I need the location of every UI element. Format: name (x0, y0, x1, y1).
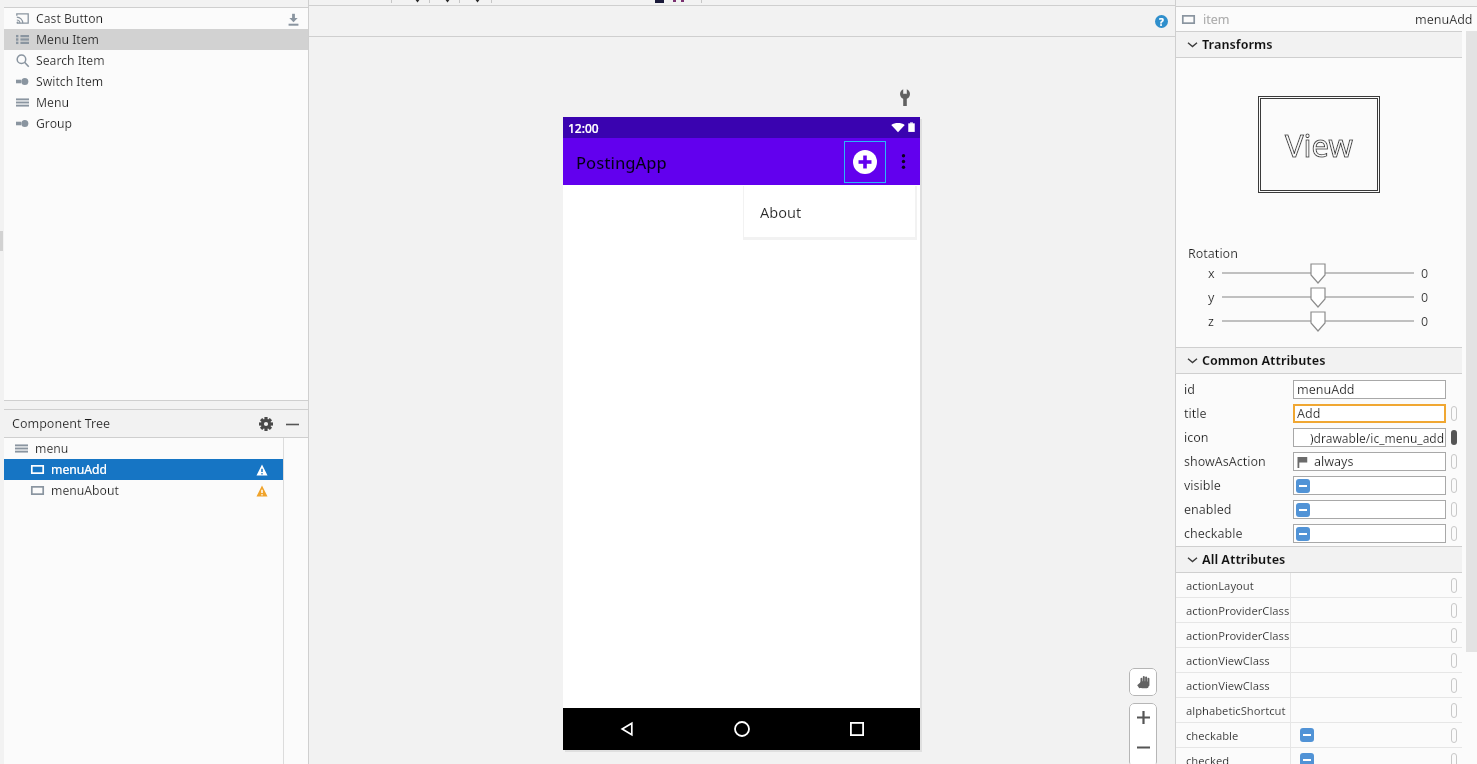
button[interactable]: Group (4, 113, 308, 134)
staticText: alphabeticShortcut (1186, 703, 1286, 718)
button[interactable]: More options (886, 138, 920, 185)
button[interactable] (1293, 524, 1446, 543)
staticText: Group (36, 115, 73, 132)
staticText: always (1314, 453, 1354, 470)
staticText: x (1208, 265, 1215, 282)
button[interactable]: Rotation z (1222, 310, 1414, 332)
staticText: title (1184, 405, 1207, 422)
button[interactable]: actionLayout (1176, 573, 1462, 597)
button[interactable]: Settings (254, 412, 278, 436)
staticText: showAsAction (1184, 453, 1266, 470)
button[interactable]: Add (844, 141, 886, 183)
staticText: 0 (1421, 265, 1429, 282)
button[interactable]: menuAdd (4, 459, 283, 480)
staticText: menuAbout (51, 482, 119, 499)
button[interactable]: actionProviderClass (1176, 623, 1462, 647)
button[interactable]: Zoom in (1129, 703, 1157, 731)
button[interactable] (1293, 500, 1446, 519)
staticText: Menu Item (36, 31, 99, 48)
button[interactable]: menu (4, 438, 283, 459)
button[interactable]: Menu Item (4, 29, 308, 50)
staticText: Search Item (36, 52, 105, 69)
button[interactable]: Pan (1129, 668, 1157, 696)
staticText: )drawable/ic_menu_add (1310, 430, 1445, 446)
button[interactable]: item (1176, 7, 1477, 31)
button[interactable]: Zoom out (1129, 731, 1157, 763)
staticText: ? (1159, 15, 1164, 28)
button[interactable]: alphabeticShortcut (1176, 698, 1462, 722)
staticText: PostingApp (576, 151, 667, 173)
staticText: actionViewClass (1186, 678, 1270, 693)
staticText: menuAdd (1297, 381, 1355, 398)
button[interactable]: Menu (4, 92, 308, 113)
button[interactable]: checkable (1176, 723, 1462, 747)
button[interactable]: Minimize (280, 412, 304, 436)
button[interactable]: Add (1293, 404, 1446, 423)
staticText: 0 (1421, 289, 1429, 306)
staticText: View (1285, 124, 1353, 166)
button[interactable]: actionViewClass (1176, 648, 1462, 672)
staticText: y (1208, 289, 1215, 306)
button[interactable] (1293, 476, 1446, 495)
button[interactable]: All Attributes (1176, 547, 1462, 572)
staticText: enabled (1184, 501, 1232, 518)
staticText: id (1184, 381, 1195, 398)
button[interactable]: menuAbout (4, 480, 283, 501)
button[interactable]: About (744, 186, 915, 237)
button[interactable]: Common Attributes (1176, 348, 1462, 373)
staticText: checked (1186, 753, 1230, 764)
staticText: menuAdd (51, 461, 108, 478)
staticText: Component Tree (12, 415, 111, 432)
button[interactable]: )drawable/ic_menu_add (1293, 428, 1446, 447)
button[interactable]: Transforms (1176, 32, 1462, 57)
staticText: actionLayout (1186, 578, 1254, 593)
staticText: actionProviderClass (1186, 628, 1290, 643)
staticText: menu (35, 440, 69, 457)
button[interactable]: Design tools (897, 87, 913, 107)
button[interactable]: Back (609, 708, 645, 750)
staticText: Transforms (1202, 36, 1273, 53)
button[interactable]: Rotation x (1222, 262, 1414, 284)
button[interactable]: actionViewClass (1176, 673, 1462, 697)
button[interactable]: always (1293, 452, 1446, 471)
staticText: z (1208, 313, 1214, 330)
staticText: icon (1184, 429, 1209, 446)
button[interactable]: Search Item (4, 50, 308, 71)
staticText: About (760, 202, 802, 222)
staticText: Rotation (1188, 245, 1238, 262)
button[interactable]: Cast Button (4, 8, 308, 29)
staticText: Cast Button (36, 10, 104, 27)
staticText: item (1203, 11, 1230, 28)
button[interactable]: Switch Item (4, 71, 308, 92)
button[interactable]: Rotation y (1222, 286, 1414, 308)
staticText: checkable (1184, 525, 1243, 542)
button[interactable]: Home (724, 708, 760, 750)
staticText: 12:00 (568, 120, 599, 136)
staticText: Common Attributes (1202, 352, 1326, 369)
button[interactable]: Help (1153, 13, 1169, 29)
button[interactable]: Recents (839, 708, 875, 750)
button[interactable]: menuAdd (1293, 380, 1446, 399)
staticText: visible (1184, 477, 1221, 494)
staticText: menuAdd (1415, 11, 1473, 28)
staticText: actionProviderClass (1186, 603, 1290, 618)
button[interactable]: checked (1176, 748, 1462, 764)
staticText: Switch Item (36, 73, 104, 90)
staticText: actionViewClass (1186, 653, 1270, 668)
staticText: All Attributes (1202, 551, 1286, 568)
button[interactable]: actionProviderClass (1176, 598, 1462, 622)
staticText: Add (1297, 405, 1321, 422)
staticText: checkable (1186, 728, 1239, 743)
staticText: Menu (36, 94, 69, 111)
staticText: 0 (1421, 313, 1429, 330)
